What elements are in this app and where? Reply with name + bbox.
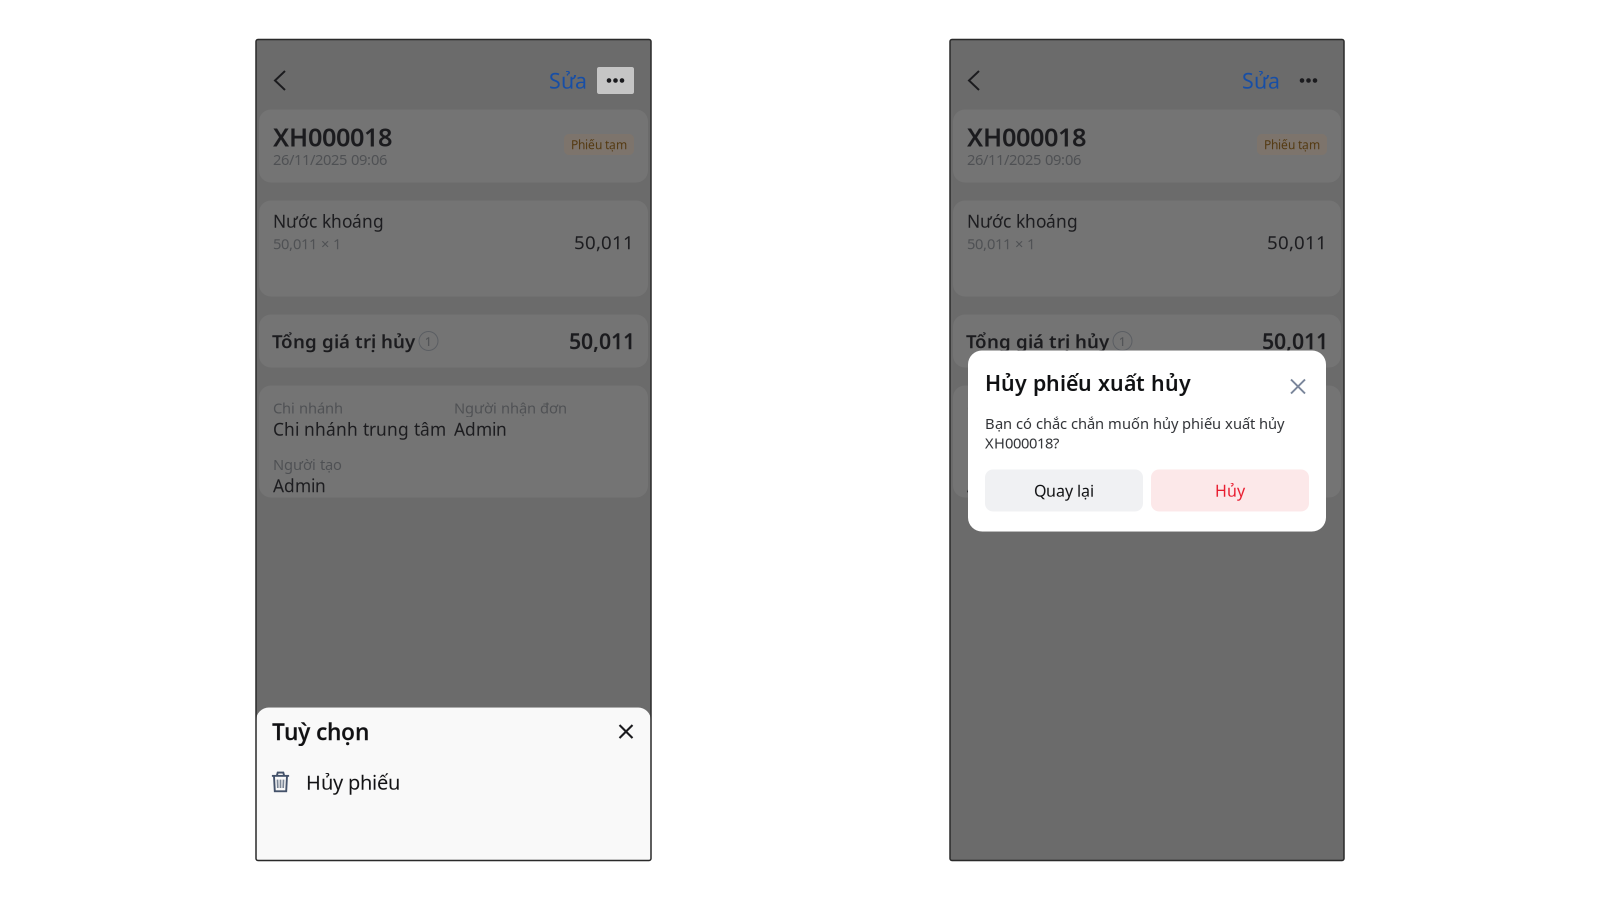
staticText: Người tạo bbox=[273, 454, 342, 474]
button[interactable]: Sửa bbox=[544, 58, 592, 102]
staticText: 1 bbox=[424, 332, 432, 350]
staticText: 1 bbox=[1118, 332, 1126, 350]
button[interactable]: Hủy bbox=[1151, 469, 1309, 511]
button[interactable]: Close bbox=[613, 719, 639, 745]
button[interactable]: Close bbox=[1287, 368, 1309, 397]
staticText: Tổng giá trị hủy bbox=[966, 329, 1109, 353]
staticText: 50,011 × 1 bbox=[273, 234, 341, 253]
staticText: 50,011 bbox=[1262, 327, 1328, 355]
staticText: 50,011 × 1 bbox=[967, 234, 1035, 253]
button[interactable]: More options bbox=[1290, 58, 1327, 102]
staticText: Admin bbox=[967, 474, 1020, 497]
staticText: Admin bbox=[273, 474, 326, 497]
staticText: Quay lại bbox=[1034, 480, 1094, 501]
staticText: Người tạo bbox=[967, 454, 1036, 474]
staticText: Tuỳ chọn bbox=[272, 716, 369, 747]
staticText: Chi nhánh trung tâm bbox=[967, 417, 1140, 440]
staticText: Người nhận đơn bbox=[1148, 398, 1261, 417]
staticText: Người nhận đơn bbox=[454, 398, 567, 417]
staticText: Sửa bbox=[549, 66, 587, 95]
staticText: Admin bbox=[454, 417, 507, 440]
staticText: Admin bbox=[1148, 417, 1201, 440]
staticText: Sửa bbox=[1242, 66, 1280, 95]
staticText: 50,011 bbox=[574, 229, 634, 254]
staticText: 50,011 bbox=[569, 327, 635, 355]
staticText: Chi nhánh bbox=[273, 398, 343, 417]
staticText: Hủy phiếu bbox=[306, 769, 400, 795]
staticText: Phiếu tạm bbox=[571, 136, 627, 152]
button[interactable]: Back bbox=[256, 58, 301, 102]
button[interactable]: Hủy phiếu bbox=[256, 761, 651, 803]
staticText: Phiếu tạm bbox=[1264, 136, 1320, 152]
staticText: XH000018 bbox=[273, 120, 392, 153]
staticText: Nước khoáng bbox=[273, 209, 384, 232]
staticText: 50,011 bbox=[1267, 229, 1327, 254]
button[interactable]: More options bbox=[597, 58, 634, 102]
button[interactable]: Sửa bbox=[1237, 58, 1285, 102]
button[interactable]: Back bbox=[950, 58, 995, 102]
staticText: 26/11/2025 09:06 bbox=[273, 150, 387, 169]
staticText: Hủy bbox=[1215, 480, 1245, 501]
staticText: Tổng giá trị hủy bbox=[272, 329, 415, 353]
staticText: XH000018 bbox=[967, 120, 1086, 153]
staticText: 26/11/2025 09:06 bbox=[967, 150, 1081, 169]
staticText: Chi nhánh bbox=[967, 398, 1037, 417]
staticText: Hủy phiếu xuất hủy bbox=[985, 368, 1191, 397]
staticText: Nước khoáng bbox=[967, 209, 1078, 232]
staticText: Chi nhánh trung tâm bbox=[273, 417, 446, 440]
button[interactable]: Quay lại bbox=[985, 469, 1143, 511]
staticText: Bạn có chắc chắn muốn hủy phiếu xuất hủy… bbox=[985, 413, 1284, 452]
